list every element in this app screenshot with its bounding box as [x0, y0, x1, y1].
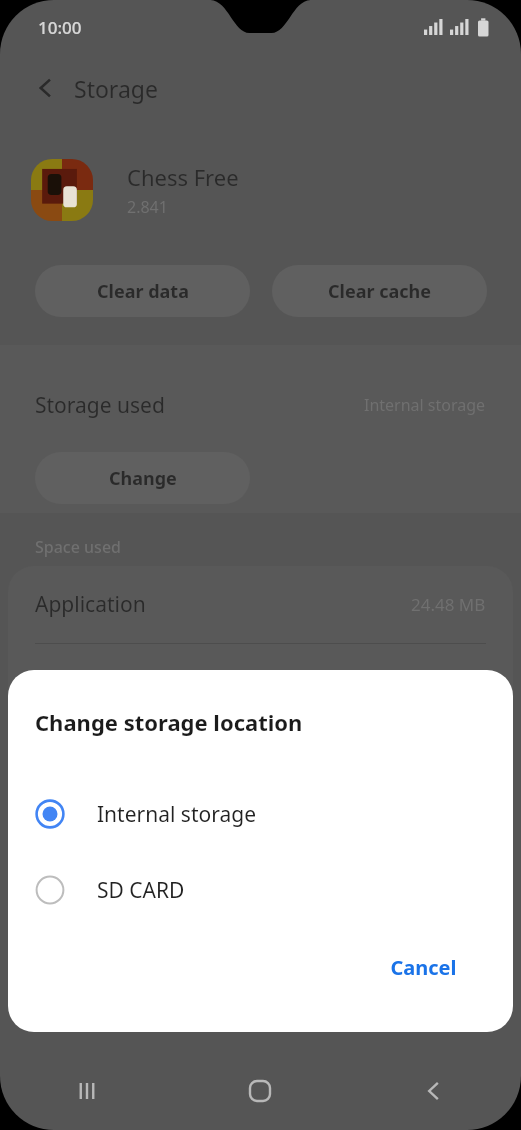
button[interactable]: Home [173, 1052, 347, 1130]
staticText: 10:00 [38, 16, 82, 39]
staticText: Change [109, 466, 177, 491]
staticText: Internal storage [97, 800, 256, 829]
staticText: Storage used [35, 391, 165, 420]
staticText: Clear cache [328, 279, 431, 304]
staticText: 24.48 MB [411, 593, 486, 616]
staticText: Change storage location [35, 707, 303, 737]
staticText: Clear data [97, 279, 189, 304]
staticText: 2.841 [127, 196, 168, 218]
button[interactable]: Internal storage [8, 776, 513, 852]
button[interactable]: Clear data [35, 265, 250, 317]
button[interactable]: Back [26, 68, 66, 108]
button[interactable]: Application [8, 566, 513, 642]
staticText: Storage [74, 73, 158, 104]
staticText: Cancel [390, 954, 457, 981]
button[interactable]: Recent apps [0, 1052, 173, 1130]
staticText: Space used [35, 536, 121, 558]
button[interactable]: SD CARD [8, 852, 513, 928]
staticText: Internal storage [364, 394, 486, 416]
button[interactable]: Back [347, 1052, 521, 1130]
button[interactable]: Clear cache [272, 265, 487, 317]
button[interactable]: Cancel [333, 939, 513, 995]
staticText: Chess Free [127, 162, 239, 192]
staticText: SD CARD [97, 876, 185, 905]
staticText: Application [35, 590, 146, 619]
button[interactable]: Change [35, 452, 250, 504]
